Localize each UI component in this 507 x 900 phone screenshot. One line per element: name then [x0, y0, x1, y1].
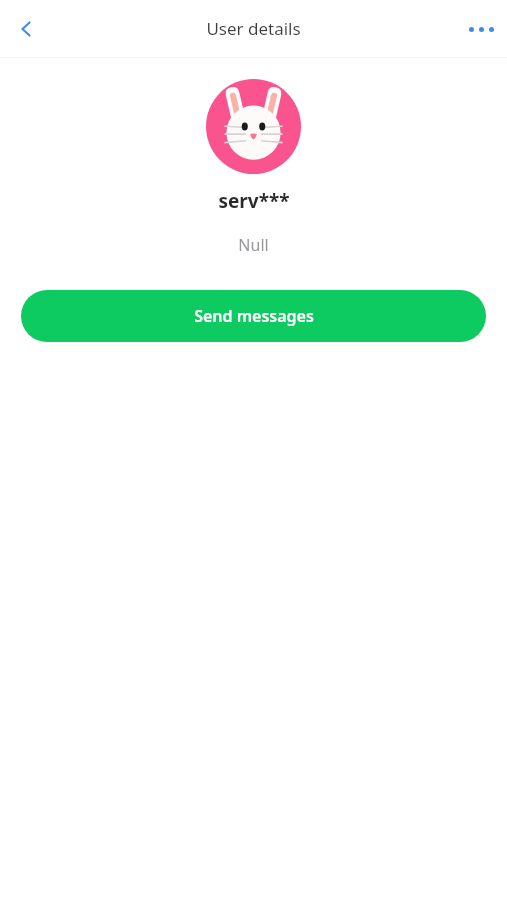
staticText: Send messages [194, 305, 314, 327]
button[interactable]: Send messages [21, 290, 486, 342]
button[interactable]: Profile picture [206, 79, 301, 174]
staticText: serv*** [218, 188, 290, 214]
button[interactable]: Back [0, 3, 52, 55]
staticText: User details [206, 17, 301, 40]
staticText: Null [238, 234, 269, 256]
button[interactable]: More options [455, 3, 507, 55]
